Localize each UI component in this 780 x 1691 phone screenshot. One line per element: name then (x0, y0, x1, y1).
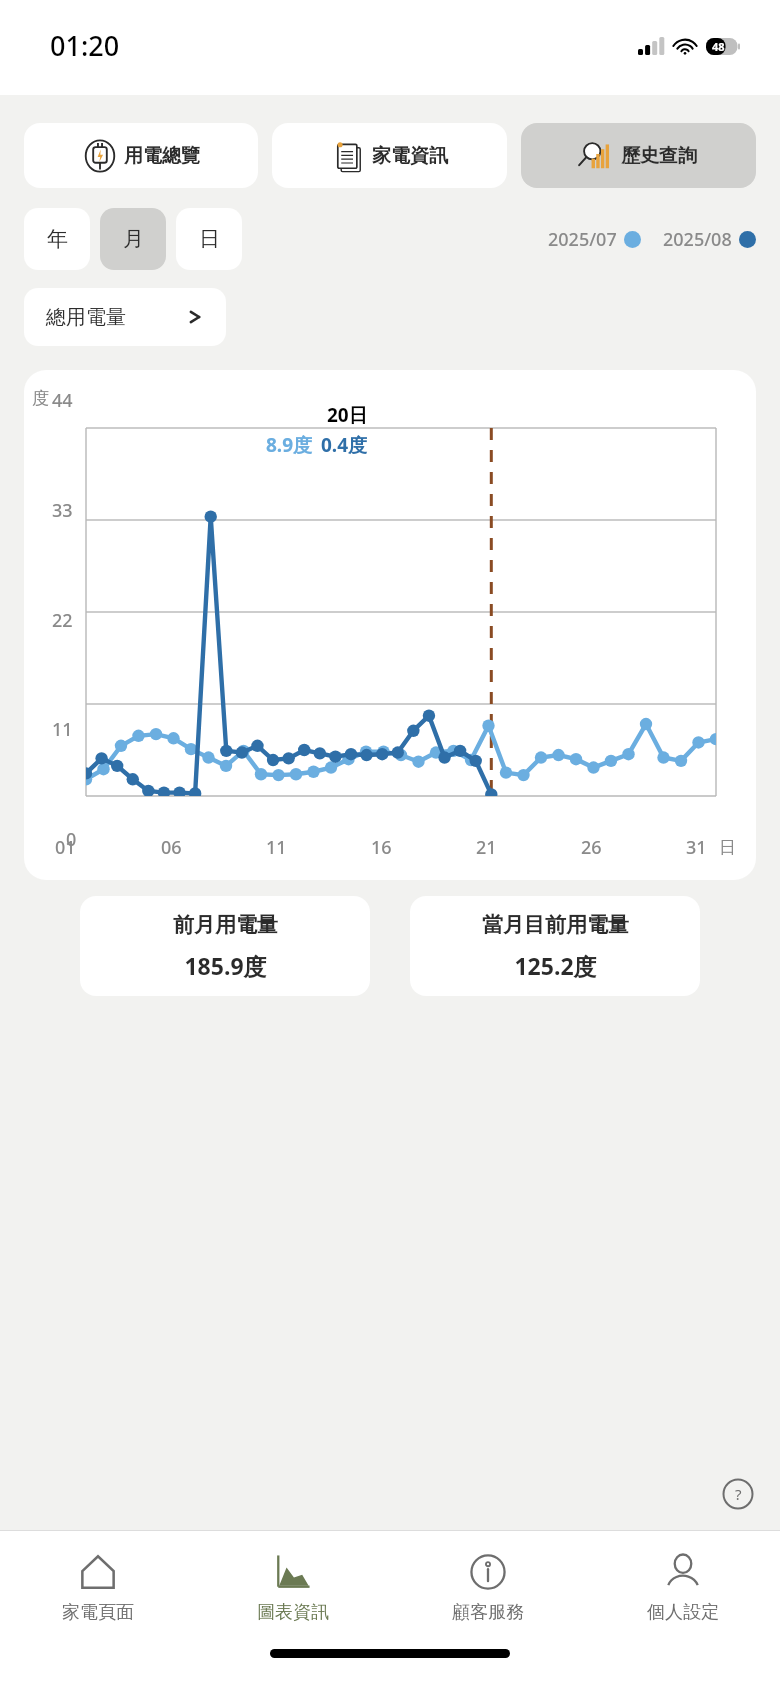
staticText: 個人設定 (647, 1601, 719, 1624)
button[interactable]: 用電總覽 (24, 123, 258, 188)
staticText: 用電總覽 (124, 144, 200, 168)
button[interactable]: 月 (100, 208, 166, 270)
staticText: 月 (123, 226, 144, 252)
button[interactable]: 個人設定 (585, 1531, 780, 1641)
staticText: 01 (55, 835, 76, 860)
staticText: 家電資訊 (372, 144, 448, 168)
staticText: 11 (266, 835, 287, 860)
staticText: 26 (581, 835, 602, 860)
staticText: 16 (371, 835, 392, 860)
staticText: 年 (47, 226, 68, 252)
staticText: 44 (52, 388, 73, 413)
button[interactable]: 總用電量 (24, 288, 226, 346)
button[interactable]: 當月目前用電量 (410, 896, 700, 996)
staticText: 2025/08 (663, 227, 732, 252)
staticText: 01:20 (50, 27, 120, 64)
staticText: 顧客服務 (452, 1601, 524, 1624)
staticText: 日 (199, 226, 220, 252)
button[interactable]: Help (720, 1476, 756, 1512)
staticText: 185.9度 (184, 950, 267, 981)
staticText: 前月用電量 (173, 912, 278, 938)
button[interactable]: 歷史查詢 (521, 123, 756, 188)
button[interactable]: 顧客服務 (390, 1531, 585, 1641)
staticText: 20日 (327, 402, 368, 428)
staticText: 2025/07 (548, 227, 617, 252)
staticText: 21 (476, 835, 497, 860)
button[interactable]: 前月用電量 (80, 896, 370, 996)
staticText: 22 (52, 608, 73, 633)
staticText: 度 (32, 388, 49, 409)
staticText: 總用電量 (46, 305, 126, 330)
staticText: 圖表資訊 (257, 1601, 329, 1624)
staticText: ? (735, 1484, 742, 1504)
staticText: 當月目前用電量 (482, 912, 629, 938)
staticText: 31 (686, 835, 707, 860)
staticText: 11 (52, 717, 73, 742)
staticText: 0.4度 (321, 432, 368, 458)
button[interactable]: 家電頁面 (0, 1531, 195, 1641)
button[interactable]: 家電資訊 (272, 123, 507, 188)
button[interactable]: 日 (176, 208, 242, 270)
staticText: 06 (161, 835, 182, 860)
staticText: 48 (712, 39, 725, 54)
staticText: 日 (719, 837, 736, 858)
staticText: 0 (66, 827, 77, 852)
button[interactable]: 年 (24, 208, 90, 270)
staticText: 33 (52, 498, 73, 523)
staticText: 125.2度 (514, 950, 597, 981)
staticText: 家電頁面 (62, 1601, 134, 1624)
staticText: 8.9度 (266, 432, 313, 458)
button[interactable]: 圖表資訊 (195, 1531, 390, 1641)
staticText: 歷史查詢 (621, 144, 697, 168)
